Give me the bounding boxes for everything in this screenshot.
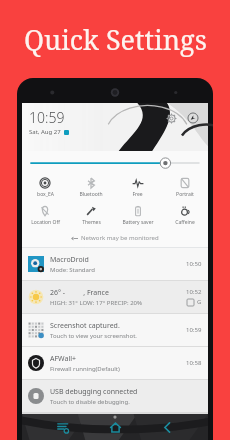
button[interactable]: Battery xyxy=(186,111,200,125)
button[interactable]: Themes xyxy=(68,201,114,229)
staticText: Firewall running(Default) xyxy=(50,365,120,373)
staticText: Portrait xyxy=(176,191,194,198)
staticText: 10:58 xyxy=(186,359,202,367)
button[interactable]: Location Off xyxy=(22,201,68,229)
button[interactable]: MacroDroid xyxy=(22,248,208,280)
button[interactable]: AFWall+ xyxy=(22,347,208,379)
staticText: Free xyxy=(132,191,143,198)
button[interactable]: USB debugging connected xyxy=(22,380,208,412)
button[interactable] xyxy=(22,151,208,173)
button[interactable]: Portrait xyxy=(161,173,208,201)
staticText: Screenshot captured. xyxy=(50,321,120,331)
staticText: HIGH: 31° LOW: 17° PRECIP: 20% xyxy=(50,299,143,307)
button[interactable]: box_EA xyxy=(22,173,68,201)
staticText: 10:59 xyxy=(29,108,65,127)
staticText: box_EA xyxy=(37,191,54,198)
staticText: AFWall+ xyxy=(50,354,77,364)
staticText: Location Off xyxy=(31,219,60,226)
button[interactable]: 26° - , France xyxy=(22,281,208,313)
staticText: Bluetooth xyxy=(79,191,103,198)
staticText: G xyxy=(197,298,202,306)
button[interactable]: Caffeine xyxy=(161,201,208,229)
staticText: Themes xyxy=(82,219,101,226)
button[interactable]: Screenshot captured. xyxy=(22,314,208,346)
button[interactable]: Battery saver xyxy=(114,201,161,229)
staticText: Touch to view your screenshot. xyxy=(50,332,137,340)
staticText: Battery saver xyxy=(122,219,154,226)
button[interactable]: Home xyxy=(104,416,126,438)
button[interactable]: Free xyxy=(114,173,161,201)
staticText: Network may be monitored xyxy=(81,234,159,242)
staticText: 10:50 xyxy=(186,260,202,268)
button[interactable]: Recent apps xyxy=(52,416,74,438)
button[interactable]: Settings xyxy=(164,111,178,125)
staticText: Caffeine xyxy=(175,219,195,226)
staticText: Quick Settings xyxy=(24,21,207,58)
staticText: 26° - , France xyxy=(50,288,109,298)
button[interactable]: Bluetooth xyxy=(68,173,114,201)
staticText: Sat, Aug 27 xyxy=(29,128,61,136)
button[interactable]: Back xyxy=(156,416,178,438)
staticText: USB debugging connected xyxy=(50,387,138,397)
staticText: 10:52 xyxy=(186,288,202,296)
staticText: MacroDroid xyxy=(50,255,89,265)
staticText: Mode: Standard xyxy=(50,266,95,274)
staticText: 10:59 xyxy=(186,326,202,334)
staticText: Touch to disable debugging. xyxy=(50,398,130,406)
